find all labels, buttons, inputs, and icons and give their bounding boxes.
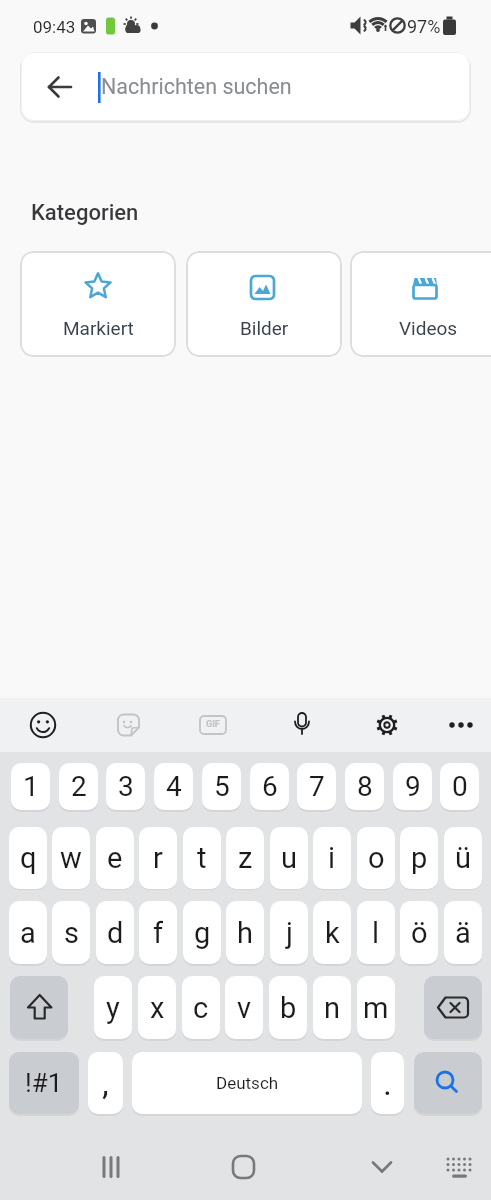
staticText: 3 xyxy=(118,770,134,803)
staticText: Videos xyxy=(399,317,458,339)
button[interactable] xyxy=(278,701,326,749)
staticText: 97% xyxy=(407,16,441,37)
button[interactable]: b xyxy=(269,976,307,1039)
button[interactable]: ü xyxy=(444,827,482,889)
button[interactable]: o xyxy=(357,827,395,889)
staticText: ä xyxy=(455,916,471,950)
button[interactable]: ä xyxy=(444,901,482,964)
button[interactable]: Bilder xyxy=(186,251,342,357)
staticText: . xyxy=(383,1063,392,1103)
button[interactable]: d xyxy=(96,901,134,964)
button[interactable]: u xyxy=(270,827,308,889)
staticText: n xyxy=(324,991,341,1025)
button[interactable]: m xyxy=(357,976,395,1039)
button[interactable]: v xyxy=(225,976,263,1039)
staticText: k xyxy=(325,916,340,950)
button[interactable] xyxy=(216,1140,272,1196)
staticText: 1 xyxy=(23,770,39,803)
staticText: w xyxy=(60,841,82,875)
staticText: r xyxy=(153,841,163,875)
staticText: 5 xyxy=(214,770,230,803)
button[interactable] xyxy=(189,701,237,749)
staticText: Deutsch xyxy=(216,1073,279,1093)
staticText: u xyxy=(281,841,297,875)
button[interactable]: Nachrichten suchen xyxy=(21,52,470,121)
staticText: v xyxy=(237,991,252,1025)
button[interactable] xyxy=(83,1140,139,1196)
button[interactable]: x xyxy=(138,976,176,1039)
staticText: a xyxy=(20,916,36,950)
button[interactable]: 3 xyxy=(106,763,145,810)
staticText: 7 xyxy=(309,770,325,803)
button[interactable]: 2 xyxy=(59,763,98,810)
button[interactable] xyxy=(437,701,485,749)
button[interactable] xyxy=(354,1140,410,1196)
button[interactable]: h xyxy=(226,901,264,964)
button[interactable]: 7 xyxy=(297,763,336,810)
staticText: b xyxy=(280,991,297,1025)
button[interactable]: 0 xyxy=(440,763,479,810)
staticText: h xyxy=(237,916,253,950)
button[interactable]: 6 xyxy=(250,763,289,810)
button[interactable]: q xyxy=(9,827,47,889)
button[interactable]: 5 xyxy=(202,763,241,810)
button[interactable]: 8 xyxy=(345,763,384,810)
button[interactable]: c xyxy=(182,976,220,1039)
button[interactable]: , xyxy=(88,1052,123,1114)
staticText: 8 xyxy=(357,770,373,803)
button[interactable] xyxy=(10,976,68,1039)
button[interactable] xyxy=(104,701,152,749)
button[interactable]: r xyxy=(139,827,177,889)
button[interactable]: Deutsch xyxy=(132,1052,362,1114)
staticText: !#1 xyxy=(25,1068,63,1098)
button[interactable]: i xyxy=(313,827,351,889)
staticText: 6 xyxy=(262,770,278,803)
button[interactable]: . xyxy=(371,1052,404,1114)
staticText: d xyxy=(107,916,124,950)
button[interactable]: f xyxy=(139,901,177,964)
button[interactable]: e xyxy=(96,827,134,889)
button[interactable]: 9 xyxy=(393,763,432,810)
button[interactable]: t xyxy=(183,827,221,889)
staticText: 09:43 xyxy=(33,17,76,37)
staticText: m xyxy=(363,991,389,1025)
staticText: i xyxy=(328,841,336,875)
staticText: s xyxy=(64,916,79,950)
button[interactable]: 4 xyxy=(154,763,193,810)
staticText: 9 xyxy=(405,770,421,803)
staticText: 4 xyxy=(166,770,182,803)
button[interactable] xyxy=(363,701,411,749)
staticText: , xyxy=(102,1063,109,1103)
staticText: o xyxy=(368,841,385,875)
button[interactable] xyxy=(19,701,67,749)
button[interactable]: g xyxy=(183,901,221,964)
button[interactable]: a xyxy=(9,901,47,964)
button[interactable]: n xyxy=(313,976,351,1039)
button[interactable]: k xyxy=(313,901,351,964)
button[interactable]: 1 xyxy=(11,763,50,810)
staticText: p xyxy=(411,841,428,875)
staticText: Bilder xyxy=(240,317,289,339)
staticText: ü xyxy=(455,841,471,875)
button[interactable]: Markiert xyxy=(20,251,176,357)
staticText: 2 xyxy=(71,770,87,803)
button[interactable]: z xyxy=(226,827,264,889)
button[interactable]: l xyxy=(357,901,395,964)
button[interactable]: w xyxy=(52,827,90,889)
button[interactable]: ö xyxy=(400,901,438,964)
button[interactable] xyxy=(414,1052,482,1114)
button[interactable]: j xyxy=(270,901,308,964)
staticText: Nachrichten suchen xyxy=(101,74,292,99)
button[interactable]: s xyxy=(52,901,90,964)
staticText: Kategorien xyxy=(31,200,139,226)
button[interactable] xyxy=(431,1140,487,1196)
button[interactable] xyxy=(424,976,482,1039)
staticText: e xyxy=(107,841,123,875)
staticText: g xyxy=(194,916,211,950)
staticText: ö xyxy=(411,916,428,950)
button[interactable]: y xyxy=(94,976,132,1039)
staticText: GIF xyxy=(206,719,220,730)
button[interactable]: Videos xyxy=(350,251,491,357)
button[interactable]: !#1 xyxy=(9,1052,79,1114)
button[interactable]: p xyxy=(400,827,438,889)
